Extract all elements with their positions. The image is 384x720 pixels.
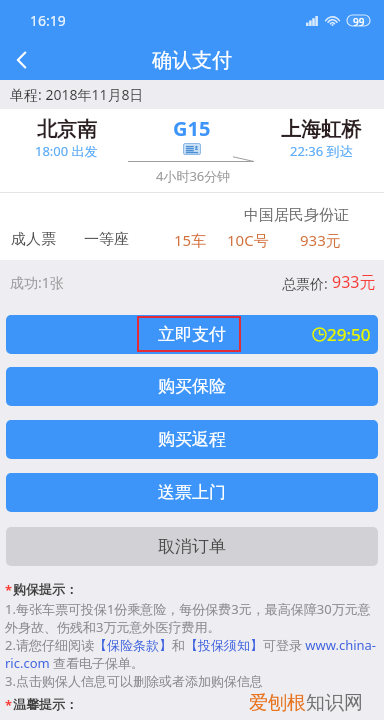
button[interactable]: 取消订单 bbox=[6, 527, 378, 566]
staticText: * bbox=[5, 696, 13, 714]
staticText: 10C号 bbox=[227, 230, 269, 250]
staticText: G15 bbox=[173, 115, 211, 142]
staticText: 15车 bbox=[174, 230, 207, 250]
staticText: 99 bbox=[353, 15, 365, 26]
staticText: 购买返程 bbox=[158, 429, 226, 450]
button[interactable]: 购买返程 bbox=[6, 420, 378, 459]
staticText: 1.每张车票可投保1份乘意险，每份保费3元，最高保障30万元意 外身故、伤残和3… bbox=[5, 600, 377, 690]
staticText: 中国居民身份证 bbox=[244, 206, 349, 225]
staticText: 确认支付 bbox=[152, 48, 232, 73]
staticText: 上海虹桥 bbox=[281, 117, 361, 142]
staticText: 送票上门 bbox=[158, 482, 226, 503]
staticText: 温馨提示： bbox=[13, 696, 78, 712]
staticText: * bbox=[5, 581, 13, 599]
staticText: 4小时36分钟 bbox=[156, 167, 231, 185]
staticText: 爱刨根知识网 bbox=[249, 691, 363, 715]
staticText: 北京南 bbox=[37, 117, 97, 142]
staticText: 总票价: bbox=[282, 274, 332, 293]
staticText: 16:19 bbox=[30, 11, 66, 30]
staticText: 立即支付 bbox=[158, 324, 226, 345]
button[interactable]: 送票上门 bbox=[6, 473, 378, 512]
staticText: 22:36 到达 bbox=[290, 142, 353, 160]
staticText: 单程: 2018年11月8日 bbox=[10, 85, 144, 104]
staticText: 一等座 bbox=[84, 230, 129, 249]
staticText: 购买保险 bbox=[158, 376, 226, 397]
staticText: 成功:1张 bbox=[10, 273, 64, 292]
button[interactable]: 购买保险 bbox=[6, 367, 378, 406]
staticText: 29:50 bbox=[327, 323, 371, 346]
staticText: 933元 bbox=[300, 230, 341, 250]
staticText: 18:00 出发 bbox=[35, 142, 98, 160]
button[interactable]: Back bbox=[0, 40, 42, 80]
staticText: 933元 bbox=[332, 271, 376, 293]
button[interactable]: 立即支付 bbox=[6, 315, 378, 354]
staticText: 成人票 bbox=[11, 230, 56, 249]
staticText: 取消订单 bbox=[158, 536, 226, 557]
staticText: 购保提示： bbox=[13, 581, 78, 597]
